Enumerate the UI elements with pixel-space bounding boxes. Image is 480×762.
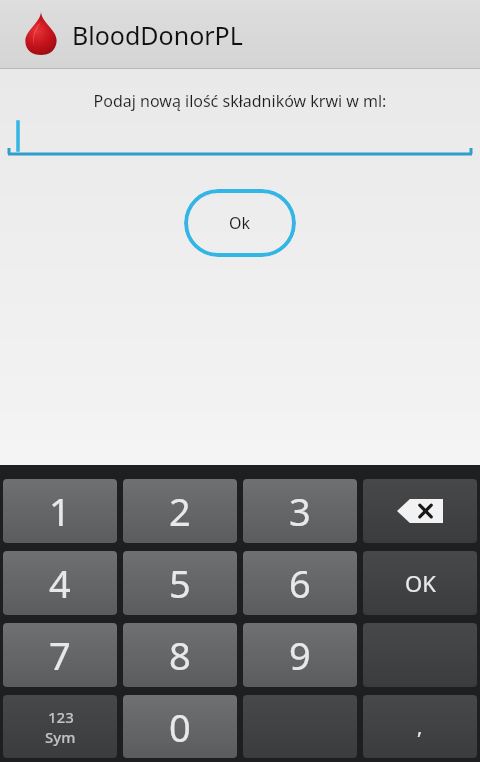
button[interactable]: 2 <box>123 479 237 543</box>
staticText: 8 <box>169 629 191 681</box>
button[interactable]: Key <box>243 695 357 758</box>
staticText: 1 <box>49 485 71 537</box>
button[interactable]: , <box>363 695 477 758</box>
staticText: 0 <box>169 701 191 753</box>
button[interactable]: 4 <box>3 551 117 615</box>
button[interactable]: Backspace <box>363 479 477 543</box>
button[interactable]: Ok <box>184 189 296 257</box>
staticText: 7 <box>49 629 71 681</box>
button[interactable]: OK <box>363 551 477 615</box>
staticText: OK <box>405 568 436 598</box>
staticText: 2 <box>169 485 191 537</box>
staticText: , <box>417 713 423 740</box>
staticText: 3 <box>289 485 311 537</box>
button[interactable]: 6 <box>243 551 357 615</box>
button[interactable]: 8 <box>123 623 237 687</box>
staticText: Sym <box>45 727 76 747</box>
button[interactable]: 1 <box>3 479 117 543</box>
button[interactable]: 9 <box>243 623 357 687</box>
button[interactable]: 5 <box>123 551 237 615</box>
staticText: 9 <box>289 629 311 681</box>
button[interactable]: 0 <box>123 695 237 758</box>
button[interactable]: 3 <box>243 479 357 543</box>
staticText: 5 <box>169 557 191 609</box>
staticText: Podaj nową ilość składników krwi w ml: <box>0 90 480 112</box>
staticText: 6 <box>289 557 311 609</box>
staticText: Ok <box>229 212 251 234</box>
staticText: 4 <box>49 557 71 609</box>
button[interactable]: 7 <box>3 623 117 687</box>
staticText: 123 <box>48 707 74 727</box>
button[interactable]: Key <box>363 623 477 687</box>
button[interactable]: 123 Sym <box>3 695 117 758</box>
button[interactable] <box>0 122 480 162</box>
staticText: BloodDonorPL <box>72 18 243 52</box>
